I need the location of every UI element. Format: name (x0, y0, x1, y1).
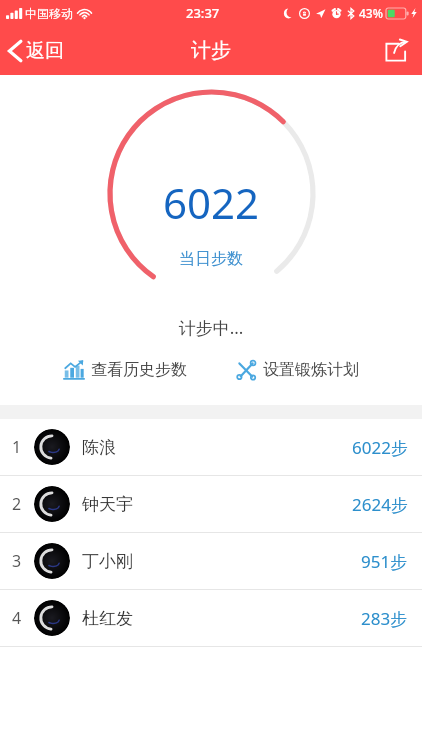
staticText: 2624步 (352, 493, 408, 516)
button[interactable]: 4 (0, 590, 422, 646)
staticText: 951步 (361, 550, 408, 573)
staticText: 计步中... (0, 316, 422, 339)
staticText: 丁小刚 (82, 551, 133, 572)
staticText: 返回 (26, 39, 64, 63)
staticText: 设置锻炼计划 (263, 360, 359, 380)
staticText: 1 (12, 436, 22, 458)
staticText: 4 (12, 607, 22, 629)
staticText: 查看历史步数 (91, 360, 187, 380)
button[interactable]: 1 (0, 419, 422, 475)
staticText: 6022 (163, 174, 260, 231)
button[interactable]: 3 (0, 533, 422, 589)
button[interactable]: 2 (0, 476, 422, 532)
staticText: 钟天宇 (82, 494, 133, 515)
staticText: 陈浪 (82, 437, 116, 458)
staticText: 杜红发 (82, 608, 133, 629)
button[interactable]: 分享 (370, 26, 422, 75)
staticText: 计步 (191, 38, 231, 63)
button[interactable]: 查看历史步数 (57, 355, 193, 385)
button[interactable]: 返回 (0, 26, 76, 75)
button[interactable]: 设置锻炼计划 (229, 355, 365, 385)
staticText: 中国移动 (25, 6, 73, 21)
staticText: 283步 (361, 607, 408, 630)
staticText: 6022步 (352, 436, 408, 459)
staticText: 当日步数 (179, 249, 243, 269)
staticText: 2 (12, 493, 22, 515)
staticText: 43% (359, 5, 383, 21)
staticText: 23:37 (186, 4, 220, 22)
staticText: 3 (12, 550, 22, 572)
